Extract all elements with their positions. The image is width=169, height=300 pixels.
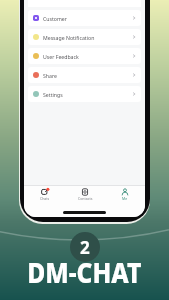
- button[interactable]: Me: [105, 188, 145, 201]
- staticText: DM-CHAT: [27, 252, 142, 291]
- staticText: Customer: [43, 15, 67, 22]
- staticText: 2: [80, 236, 90, 259]
- button[interactable]: Settings: [28, 86, 141, 102]
- staticText: Me: [122, 196, 128, 201]
- button[interactable]: Chats: [24, 188, 65, 201]
- button[interactable]: 2: [70, 232, 100, 262]
- staticText: Chats: [40, 196, 50, 201]
- staticText: Message Notification: [43, 34, 95, 41]
- button[interactable]: User Feedback: [28, 48, 141, 64]
- staticText: Contacts: [78, 196, 93, 201]
- button[interactable]: Share: [28, 67, 141, 83]
- button[interactable]: Message Notification: [28, 29, 141, 45]
- staticText: User Feedback: [43, 53, 79, 60]
- button[interactable]: Contacts: [65, 188, 105, 201]
- staticText: Settings: [43, 91, 63, 98]
- staticText: Share: [43, 72, 57, 79]
- button[interactable]: Customer: [28, 10, 141, 26]
